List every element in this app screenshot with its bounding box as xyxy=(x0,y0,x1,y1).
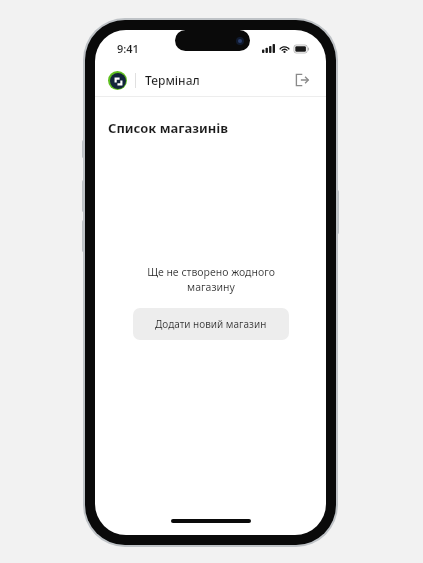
button[interactable]: Логотип xyxy=(108,71,127,90)
staticText: Список магазинів xyxy=(108,119,229,137)
staticText: Додати новий магазин xyxy=(155,317,267,331)
staticText: 9:41 xyxy=(117,41,139,56)
button[interactable]: Вийти xyxy=(291,69,313,91)
staticText: Ще не створено жодного магазину xyxy=(147,265,275,294)
button[interactable]: Додати новий магазин xyxy=(133,308,289,340)
staticText: Термінал xyxy=(145,72,200,88)
